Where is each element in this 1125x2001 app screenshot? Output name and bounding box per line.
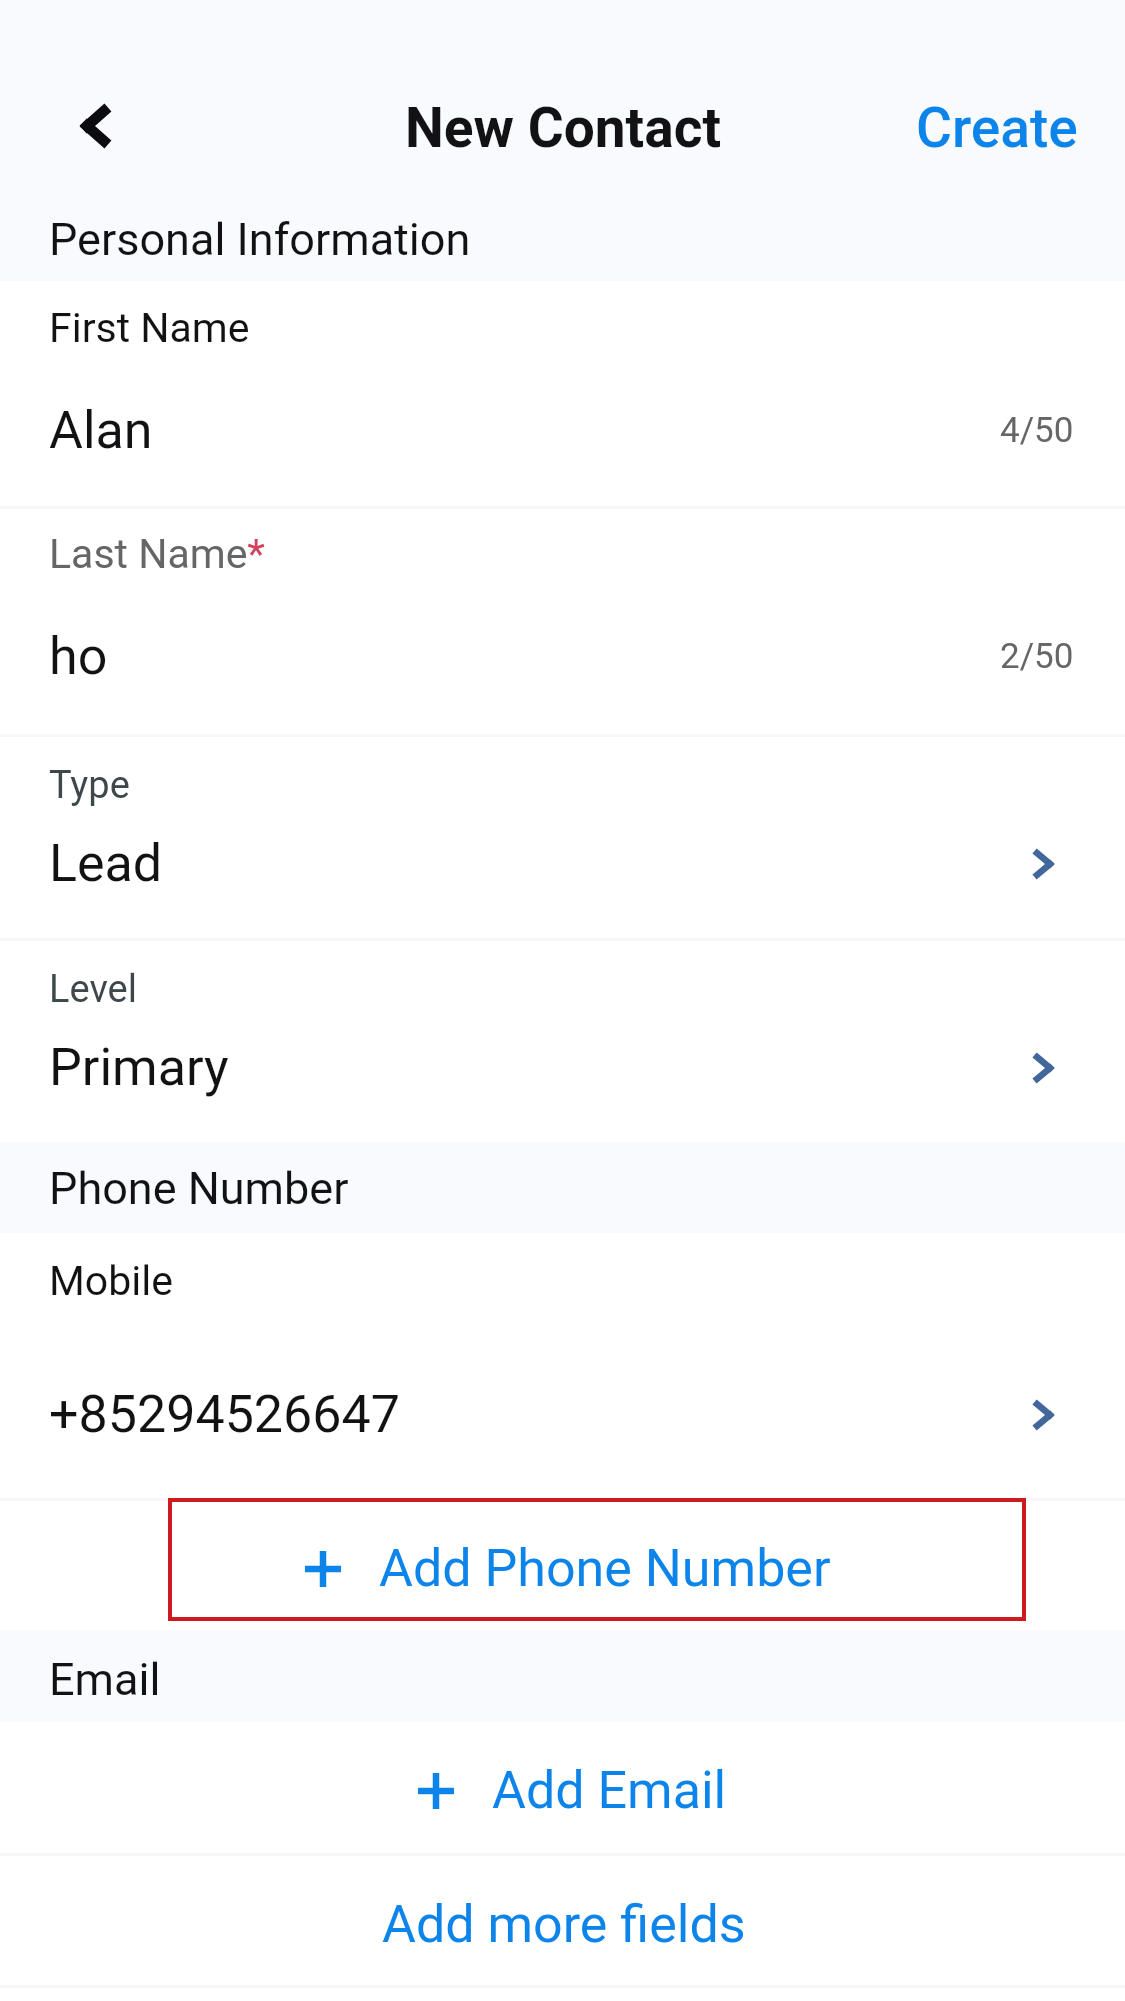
staticText: Primary — [49, 1037, 229, 1098]
button[interactable]: First Name — [0, 281, 1125, 506]
staticText: 4/50 — [1000, 410, 1074, 451]
staticText: First Name — [49, 304, 250, 352]
staticText: Phone Number — [49, 1162, 349, 1215]
staticText: Lead — [49, 833, 163, 894]
staticText: Alan — [49, 400, 153, 461]
staticText: Personal Information — [49, 213, 471, 266]
staticText: 2/50 — [1000, 636, 1074, 677]
staticText: Last Name* — [49, 530, 266, 578]
staticText: New Contact — [405, 96, 721, 160]
staticText: +85294526647 — [49, 1384, 400, 1445]
button[interactable]: Mobile — [0, 1233, 1125, 1498]
staticText: Mobile — [49, 1257, 173, 1305]
staticText: Level — [49, 967, 137, 1012]
staticText: Type — [49, 763, 130, 808]
staticText: Add more fields — [382, 1894, 746, 1955]
button[interactable]: Type — [0, 737, 1125, 938]
staticText: ho — [49, 626, 108, 687]
staticText: Add Phone Number — [379, 1538, 831, 1599]
button[interactable]: Level — [0, 941, 1125, 1142]
button[interactable]: Add Email — [0, 1725, 1125, 1856]
staticText: Create — [916, 96, 1078, 160]
button[interactable]: Back — [50, 82, 140, 170]
staticText: Add Email — [492, 1760, 727, 1821]
button[interactable]: Last Name* — [0, 509, 1125, 734]
button[interactable]: Create — [916, 96, 1078, 160]
button[interactable]: Add Phone Number — [0, 1504, 1125, 1633]
staticText: Email — [49, 1653, 161, 1706]
button[interactable]: Add more fields — [0, 1860, 1125, 1989]
